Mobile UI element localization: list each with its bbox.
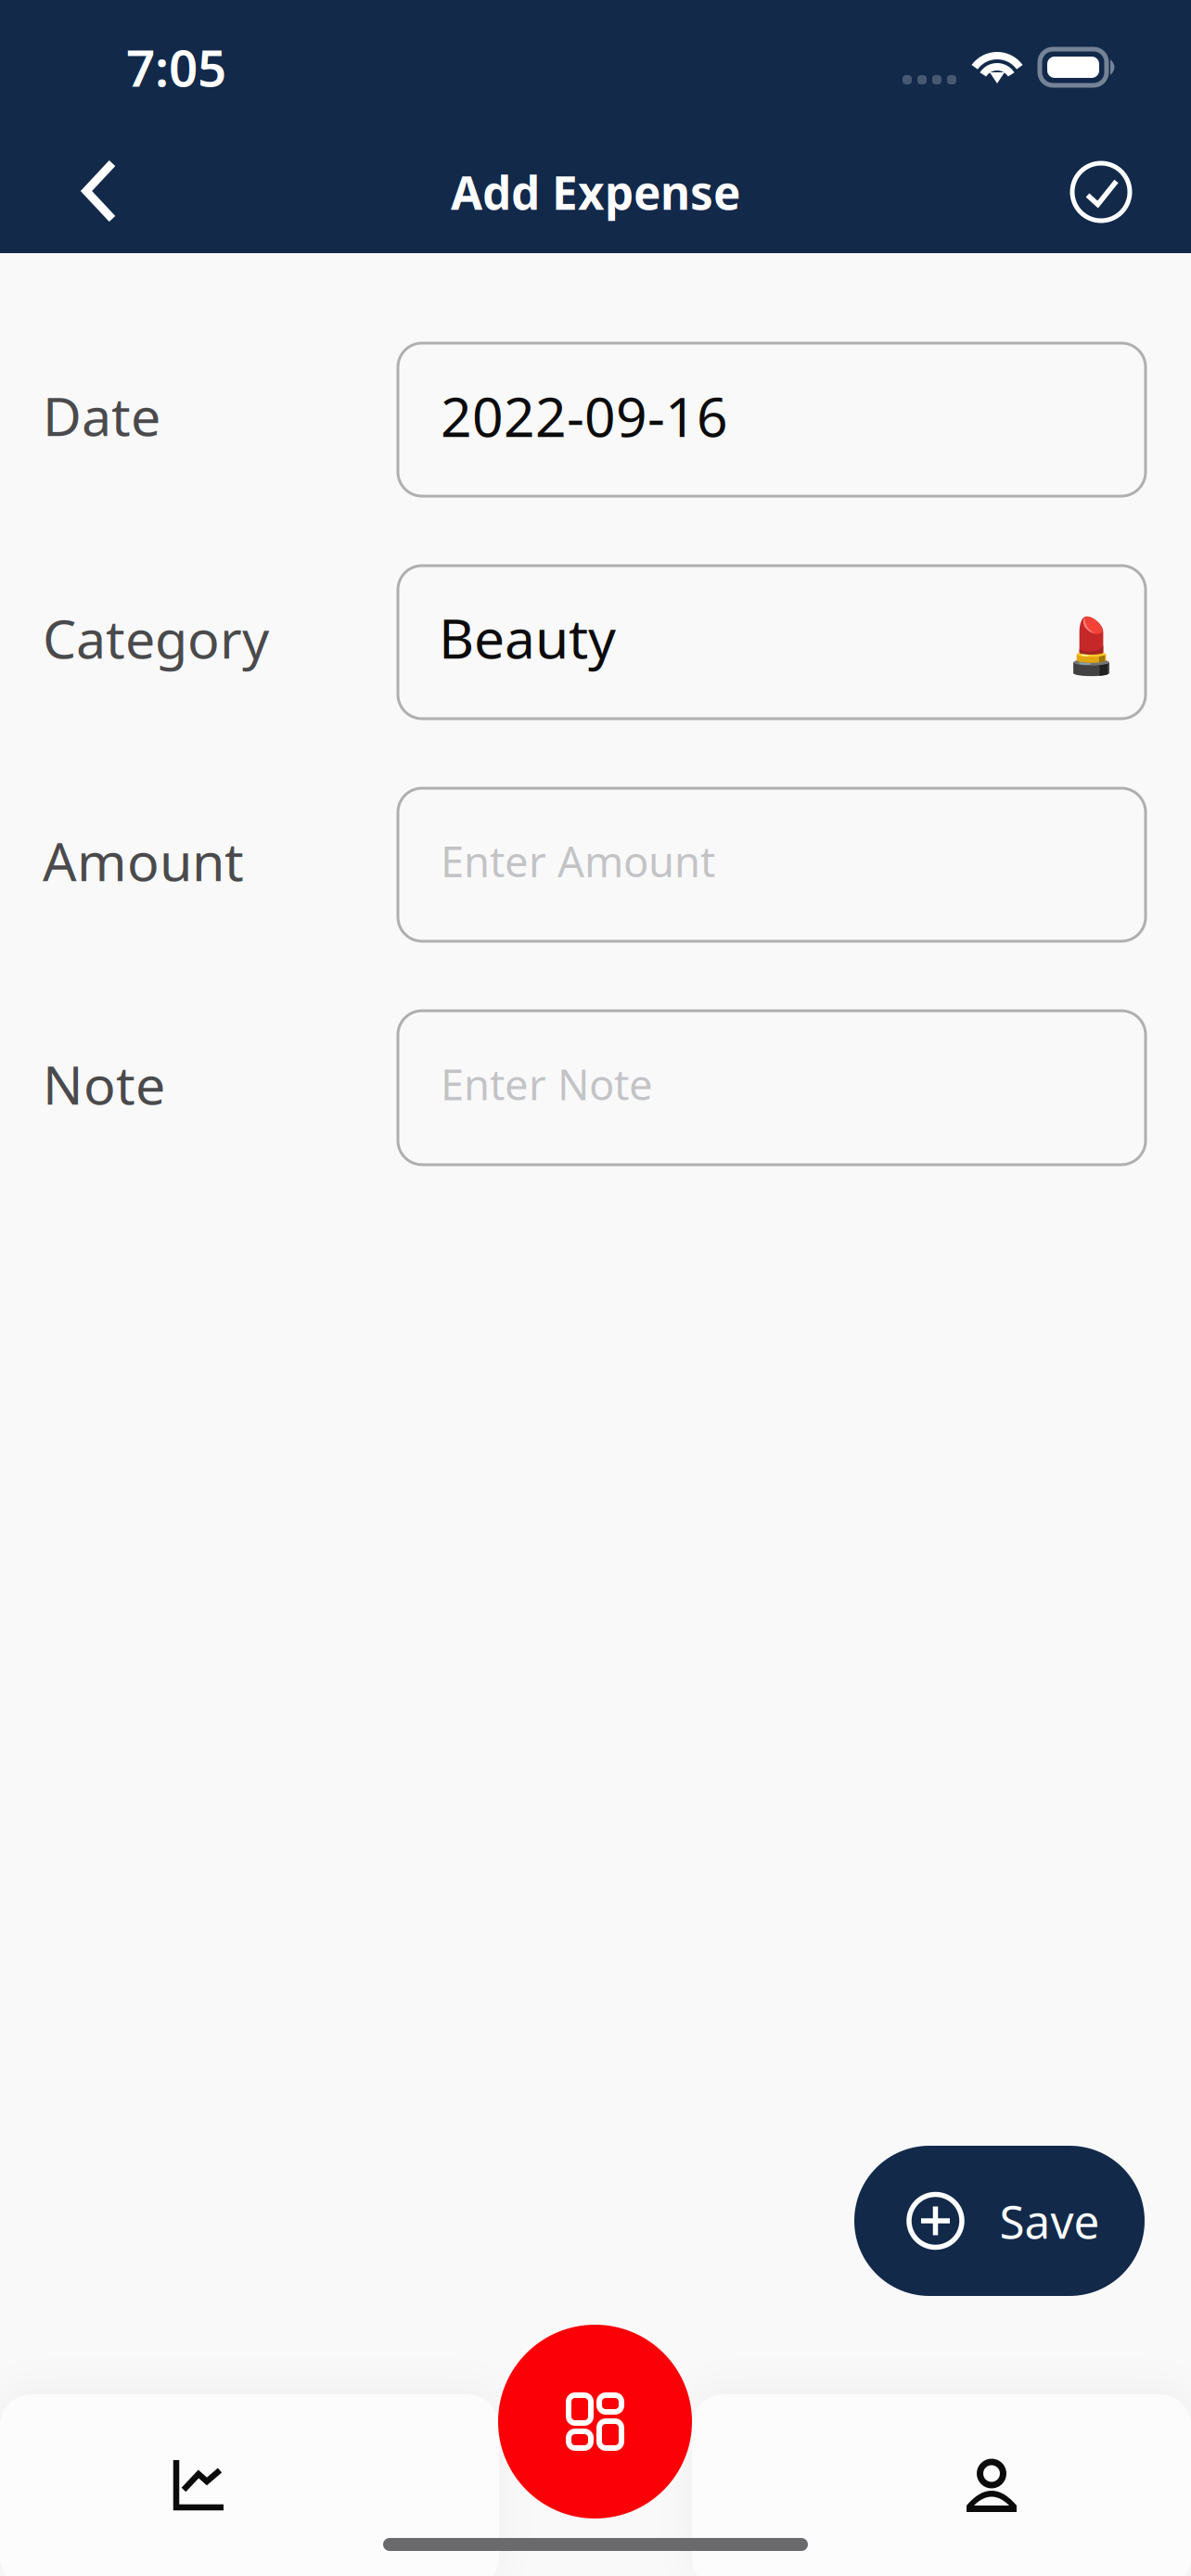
staticText: Note [43,1049,165,1119]
button[interactable]: Statistics [96,2416,301,2555]
staticText: Add Expense [451,162,740,222]
staticText: 2022-09-16 [441,380,728,452]
button[interactable]: Profile [890,2417,1094,2557]
staticText: Amount [43,825,244,896]
button[interactable]: Back [39,135,160,247]
staticText: Date [43,380,160,451]
button[interactable]: Categories [498,2325,692,2519]
button[interactable]: Enter Note [398,1011,1146,1165]
staticText: Beauty [439,601,616,674]
staticText: Category [43,603,269,673]
button[interactable]: Save [854,2146,1145,2296]
staticText: Enter Amount [441,833,715,889]
button[interactable]: Enter Amount [398,788,1146,941]
staticText: 7:05 [126,33,226,101]
staticText: 💄 [1057,615,1125,677]
button[interactable]: Beauty [398,566,1146,719]
button[interactable]: 2022-09-16 [398,343,1146,496]
staticText: Save [999,2190,1100,2251]
button[interactable]: Confirm [1045,136,1157,248]
staticText: Enter Note [441,1056,653,1112]
